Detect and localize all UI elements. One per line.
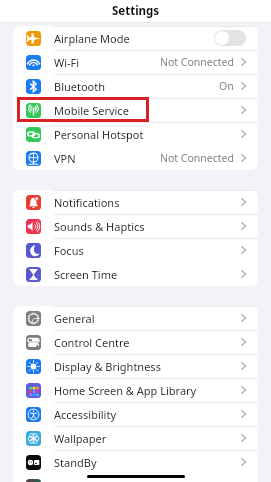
button[interactable]: Wallpaper — [13, 426, 258, 450]
button[interactable]: Control Centre — [13, 330, 258, 354]
button[interactable]: Screen Time — [13, 262, 258, 286]
staticText: Settings — [112, 3, 160, 19]
staticText: Bluetooth — [54, 79, 106, 94]
staticText: Accessibility — [54, 407, 117, 422]
staticText: StandBy — [54, 455, 97, 470]
staticText: Home Screen & App Library — [54, 383, 197, 398]
button[interactable]: Mobile Service — [13, 98, 258, 122]
button[interactable]: Home Screen & App Library — [13, 378, 258, 402]
button[interactable]: Accessibility — [13, 402, 258, 426]
staticText: Control Centre — [54, 335, 130, 350]
staticText: Screen Time — [54, 267, 118, 282]
button[interactable]: Wi-Fi — [13, 50, 258, 74]
staticText: Sounds & Haptics — [54, 219, 145, 234]
staticText: Display & Brightness — [54, 359, 161, 374]
button[interactable]: Siri & Search — [13, 474, 258, 482]
button[interactable]: Personal Hotspot — [13, 122, 258, 146]
button[interactable]: StandBy — [13, 450, 258, 474]
button[interactable]: Display & Brightness — [13, 354, 258, 378]
staticText: On — [219, 79, 234, 93]
button[interactable]: Sounds & Haptics — [13, 214, 258, 238]
button[interactable]: Bluetooth — [13, 74, 258, 98]
staticText: Not Connected — [160, 151, 234, 165]
staticText: Focus — [54, 243, 84, 258]
staticText: Mobile Service — [54, 103, 129, 118]
staticText: Wallpaper — [54, 431, 107, 446]
staticText: Airplane Mode — [54, 31, 130, 46]
button[interactable]: General — [13, 306, 258, 330]
button[interactable]: Focus — [13, 238, 258, 262]
button[interactable]: VPN — [13, 146, 258, 170]
staticText: Not Connected — [160, 55, 234, 69]
button[interactable]: Notifications — [13, 190, 258, 214]
staticText: Notifications — [54, 195, 120, 210]
staticText: Personal Hotspot — [54, 127, 144, 142]
staticText: General — [54, 311, 95, 326]
button[interactable]: Airplane Mode toggle — [214, 30, 246, 46]
staticText: VPN — [54, 151, 76, 166]
button[interactable]: Airplane Mode — [13, 26, 258, 50]
staticText: Wi-Fi — [54, 55, 80, 70]
